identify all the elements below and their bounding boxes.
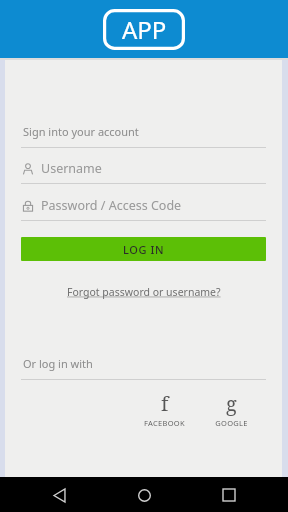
- staticText: GOOGLE: [215, 418, 248, 428]
- staticText: Password / Access Code: [41, 197, 182, 214]
- staticText: g: [226, 390, 237, 417]
- button[interactable]: Recent apps: [214, 480, 244, 510]
- button[interactable]: LOG IN: [21, 237, 266, 261]
- staticText: Username: [41, 160, 102, 177]
- staticText: Sign into your account: [23, 124, 139, 139]
- staticText: Forgot password or username?: [67, 285, 221, 299]
- button[interactable]: g: [213, 390, 250, 428]
- staticText: f: [161, 390, 169, 417]
- staticText: Or log in with: [23, 356, 93, 371]
- button[interactable]: f: [142, 390, 187, 428]
- button[interactable]: Password / Access Code: [21, 197, 266, 214]
- staticText: FACEBOOK: [144, 418, 185, 428]
- staticText: APP: [122, 13, 167, 46]
- button[interactable]: Forgot password or username?: [63, 281, 225, 303]
- button[interactable]: Back: [44, 480, 74, 510]
- button[interactable]: Home: [129, 480, 159, 510]
- button[interactable]: Username: [21, 160, 266, 177]
- staticText: LOG IN: [123, 242, 165, 257]
